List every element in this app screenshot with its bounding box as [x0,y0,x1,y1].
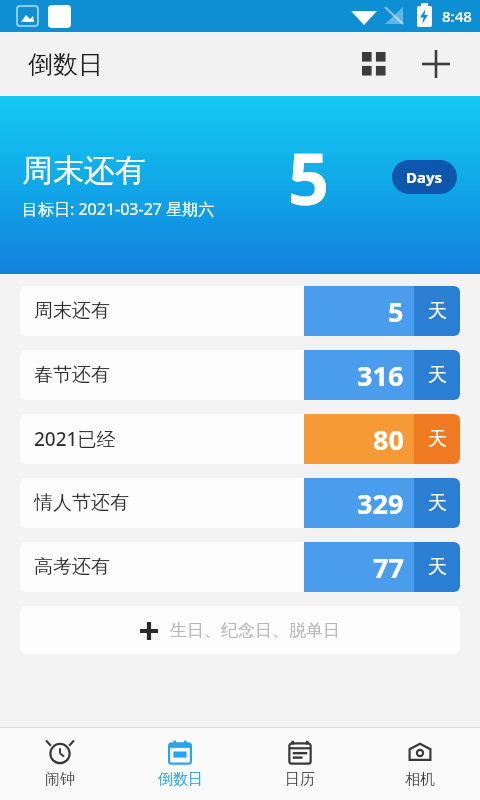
button[interactable]: 相机 [360,728,480,800]
staticText: 天 [428,555,447,579]
staticText: 倒数日 [158,770,203,789]
staticText: 相机 [405,770,435,789]
staticText: 天 [428,363,447,387]
staticText: 316 [357,357,404,394]
staticText: Days [406,167,443,187]
staticText: 80 [373,421,404,458]
staticText: 闹钟 [45,770,75,789]
staticText: 天 [428,427,447,451]
button[interactable]: 情人节还有 [20,478,460,528]
button[interactable]: 2021已经 [20,414,460,464]
staticText: 高考还有 [34,555,110,579]
staticText: 倒数日 [28,49,103,80]
staticText: 5 [388,293,404,330]
staticText: 春节还有 [34,363,110,387]
staticText: 目标日: 2021-03-27 星期六 [22,198,215,220]
staticText: 情人节还有 [34,491,129,515]
staticText: 5 [288,128,330,226]
button[interactable]: 日历 [240,728,360,800]
button[interactable]: 周末还有 [0,96,480,274]
staticText: 8:48 [442,6,472,26]
button[interactable]: 生日、纪念日、脱单日 [20,606,460,654]
staticText: 77 [373,549,404,586]
button[interactable]: Add [412,40,460,88]
button[interactable]: 春节还有 [20,350,460,400]
button[interactable]: Days [392,160,457,194]
staticText: 2021已经 [34,426,116,452]
staticText: 周末还有 [34,299,110,323]
staticText: 周末还有 [22,151,146,190]
button[interactable]: 倒数日 [120,728,240,800]
button[interactable]: 闹钟 [0,728,120,800]
staticText: 天 [428,299,447,323]
staticText: 日历 [285,770,315,789]
button[interactable]: 高考还有 [20,542,460,592]
staticText: 329 [357,485,404,522]
button[interactable]: Grid view [350,40,398,88]
button[interactable]: 周末还有 [20,286,460,336]
staticText: 天 [428,491,447,515]
staticText: 生日、纪念日、脱单日 [170,620,340,641]
